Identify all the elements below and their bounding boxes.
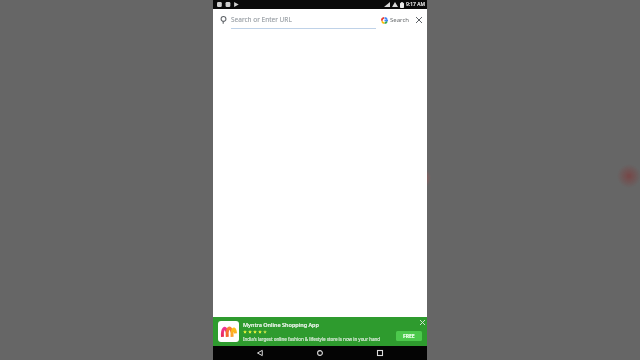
- staticText: Search or Enter URL: [231, 15, 292, 24]
- staticText: Search: [390, 16, 409, 24]
- button[interactable]: FREE: [396, 331, 422, 341]
- button[interactable]: Search or Enter URL: [231, 9, 376, 30]
- staticText: India's largest online fashion & lifesty…: [243, 336, 381, 342]
- button[interactable]: Search: [379, 14, 411, 26]
- staticText: Myntra Online Shopping App: [243, 321, 319, 328]
- button[interactable]: Recent apps: [367, 346, 393, 360]
- button[interactable]: Home: [307, 346, 333, 360]
- button[interactable]: Close ad: [417, 317, 427, 327]
- button[interactable]: Search icon: [217, 13, 231, 27]
- staticText: FREE: [403, 333, 415, 340]
- staticText: 9:17 AM: [406, 1, 425, 8]
- button[interactable]: Back: [247, 346, 273, 360]
- button[interactable]: Myntra Online Shopping App: [213, 317, 427, 346]
- button[interactable]: Close: [411, 12, 427, 28]
